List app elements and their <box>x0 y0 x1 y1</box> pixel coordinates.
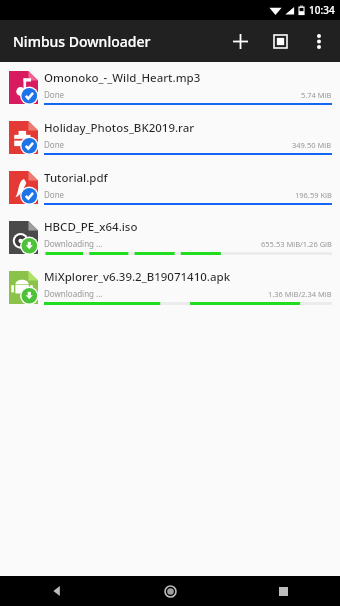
button[interactable]: Recent apps <box>227 576 340 606</box>
staticText: 655.53 MiB/1.26 GiB <box>261 239 332 249</box>
staticText: HBCD_PE_x64.iso <box>44 219 138 235</box>
button[interactable]: More options <box>300 21 337 61</box>
button[interactable]: Stop all <box>260 21 300 61</box>
button[interactable]: Back <box>0 576 114 606</box>
staticText: Done <box>44 139 65 150</box>
button[interactable]: Holiday_Photos_BK2019.rar <box>0 112 340 162</box>
staticText: Nimbus Downloader <box>13 32 220 51</box>
staticText: Downloading ... <box>44 238 103 249</box>
staticText: 349.50 MiB <box>292 140 332 150</box>
staticText: Done <box>44 89 65 100</box>
staticText: Downloading ... <box>44 288 103 299</box>
staticText: 196.59 KiB <box>295 190 332 200</box>
staticText: Done <box>44 189 65 200</box>
button[interactable]: Tutorial.pdf <box>0 162 340 212</box>
staticText: MiXplorer_v6.39.2_B19071410.apk <box>44 269 231 285</box>
staticText: Tutorial.pdf <box>44 170 108 186</box>
button[interactable]: Home <box>114 576 227 606</box>
button[interactable]: MiXplorer_v6.39.2_B19071410.apk <box>0 262 340 312</box>
button[interactable]: Add download <box>220 21 260 61</box>
staticText: Holiday_Photos_BK2019.rar <box>44 120 195 136</box>
staticText: Omonoko_-_Wild_Heart.mp3 <box>44 70 201 86</box>
button[interactable]: HBCD_PE_x64.iso <box>0 212 340 262</box>
staticText: 10:34 <box>309 3 335 17</box>
staticText: 1.36 MiB/2.34 MiB <box>268 289 332 299</box>
staticText: 5.74 MiB <box>301 90 332 100</box>
button[interactable]: Omonoko_-_Wild_Heart.mp3 <box>0 62 340 112</box>
